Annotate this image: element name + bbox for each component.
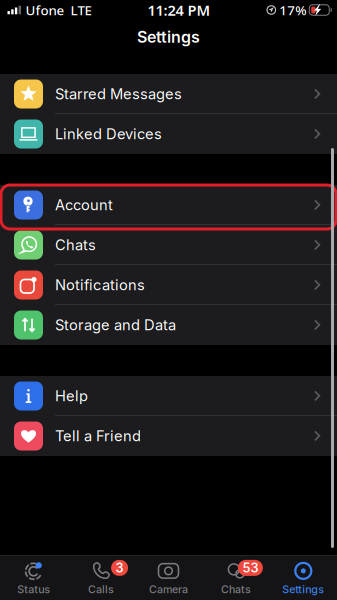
button[interactable]: Linked Devices — [0, 114, 337, 154]
button[interactable]: Help — [0, 376, 337, 416]
staticText: Starred Messages — [55, 85, 182, 103]
staticText: Camera — [149, 583, 188, 596]
staticText: Notifications — [55, 276, 145, 294]
staticText: Linked Devices — [55, 125, 162, 143]
button[interactable]: Starred Messages — [0, 74, 337, 114]
button[interactable]: 3 — [67, 557, 135, 599]
button[interactable]: 53 — [202, 557, 270, 599]
staticText: Chats — [55, 236, 96, 254]
staticText: Tell a Friend — [55, 427, 141, 445]
staticText: 17% — [279, 1, 306, 19]
staticText: Ufone — [25, 1, 64, 19]
staticText: Calls — [88, 583, 114, 596]
button[interactable]: Camera — [135, 557, 202, 599]
button[interactable]: Storage and Data — [0, 305, 337, 345]
staticText: Storage and Data — [55, 316, 176, 334]
button[interactable]: Chats — [0, 225, 337, 265]
staticText: 53 — [242, 560, 258, 575]
button[interactable]: Notifications — [0, 265, 337, 305]
staticText: Chats — [221, 583, 251, 596]
staticText: 3 — [116, 560, 124, 575]
button[interactable]: Settings — [270, 557, 337, 599]
staticText: Account — [55, 196, 113, 214]
button[interactable]: Account — [0, 185, 337, 225]
staticText: Help — [55, 387, 88, 405]
button[interactable]: Tell a Friend — [0, 416, 337, 456]
staticText: Status — [17, 583, 50, 596]
staticText: Settings — [282, 583, 324, 596]
button[interactable]: Status — [0, 557, 67, 599]
staticText: LTE — [70, 1, 91, 19]
staticText: Settings — [137, 27, 200, 47]
staticText: 11:24 PM — [147, 0, 210, 20]
